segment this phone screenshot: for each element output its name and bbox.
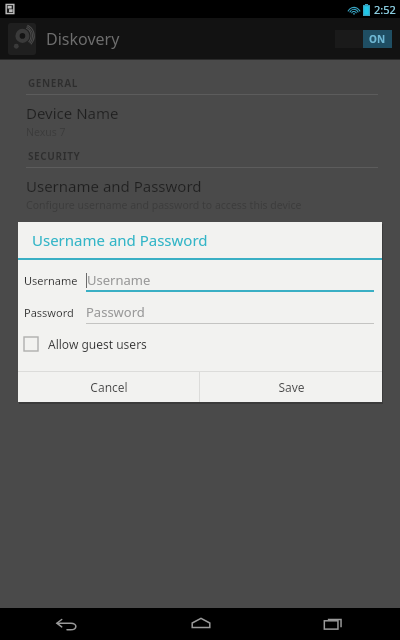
staticText: SECURITY <box>28 149 81 163</box>
staticText: Device Name <box>26 103 119 123</box>
button[interactable]: Home <box>134 608 267 640</box>
staticText: Username <box>24 273 78 288</box>
button[interactable]: Recent apps <box>267 608 400 640</box>
button[interactable]: Enable Diskovery <box>335 30 392 48</box>
button[interactable]: Password <box>18 300 382 324</box>
staticText: Diskovery <box>46 28 120 50</box>
staticText: Username and Password <box>32 230 208 250</box>
button[interactable]: Save <box>200 372 382 402</box>
staticText: Password <box>86 303 145 321</box>
staticText: Nexus 7 <box>26 125 66 139</box>
button[interactable]: App icon <box>8 23 36 55</box>
button[interactable]: Back <box>0 608 134 640</box>
staticText: Username <box>87 271 151 289</box>
button[interactable]: Username and Password <box>0 168 400 222</box>
staticText: GENERAL <box>28 76 78 90</box>
staticText: Save <box>278 379 305 395</box>
staticText: Password <box>24 305 74 320</box>
button[interactable]: Cancel <box>18 372 199 402</box>
button[interactable]: Device Name <box>0 95 400 149</box>
staticText: Configure username and password to acces… <box>26 198 302 212</box>
staticText: 2:52 <box>374 2 396 17</box>
button[interactable]: Allow guest users <box>18 332 382 356</box>
staticText: Username and Password <box>26 176 202 196</box>
staticText: ON <box>369 32 386 46</box>
staticText: Allow guest users <box>48 336 147 352</box>
button[interactable]: Username <box>18 268 382 292</box>
staticText: Cancel <box>90 379 128 395</box>
